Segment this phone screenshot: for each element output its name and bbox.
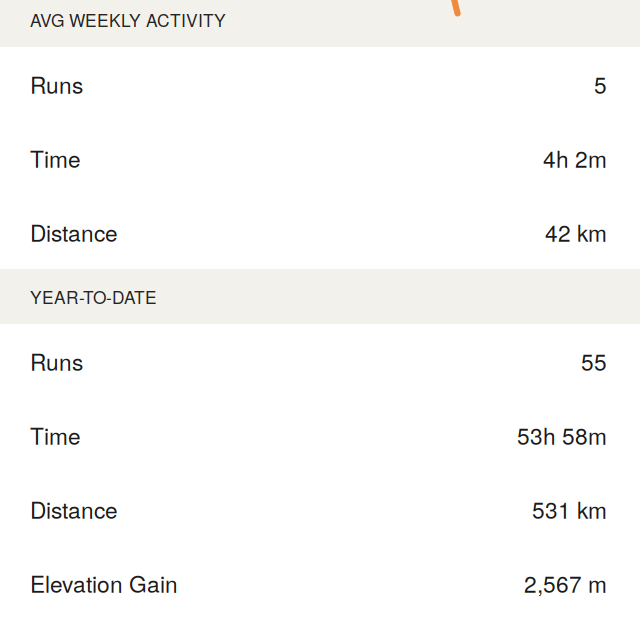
staticText: Elevation Gain — [30, 567, 178, 599]
button[interactable]: Runs — [0, 47, 640, 121]
staticText: 55 — [581, 345, 607, 377]
staticText: Time — [30, 142, 81, 174]
staticText: AVG WEEKLY ACTIVITY — [30, 7, 226, 32]
staticText: Distance — [30, 493, 118, 525]
button[interactable]: Distance — [0, 195, 640, 269]
button[interactable]: Runs — [0, 324, 640, 398]
staticText: 53h 58m — [517, 419, 607, 451]
staticText: Runs — [30, 345, 83, 377]
staticText: Runs — [30, 68, 83, 100]
button[interactable]: Time — [0, 398, 640, 472]
staticText: 4h 2m — [543, 142, 607, 174]
staticText: 42 km — [545, 216, 607, 248]
button[interactable]: Time — [0, 121, 640, 195]
staticText: Time — [30, 419, 81, 451]
staticText: Distance — [30, 216, 118, 248]
button[interactable]: Elevation Gain — [0, 546, 640, 617]
staticText: 2,567 m — [524, 567, 607, 599]
staticText: YEAR-TO-DATE — [30, 284, 157, 309]
staticText: 5 — [594, 68, 607, 100]
button[interactable]: Distance — [0, 472, 640, 546]
staticText: 531 km — [532, 493, 607, 525]
